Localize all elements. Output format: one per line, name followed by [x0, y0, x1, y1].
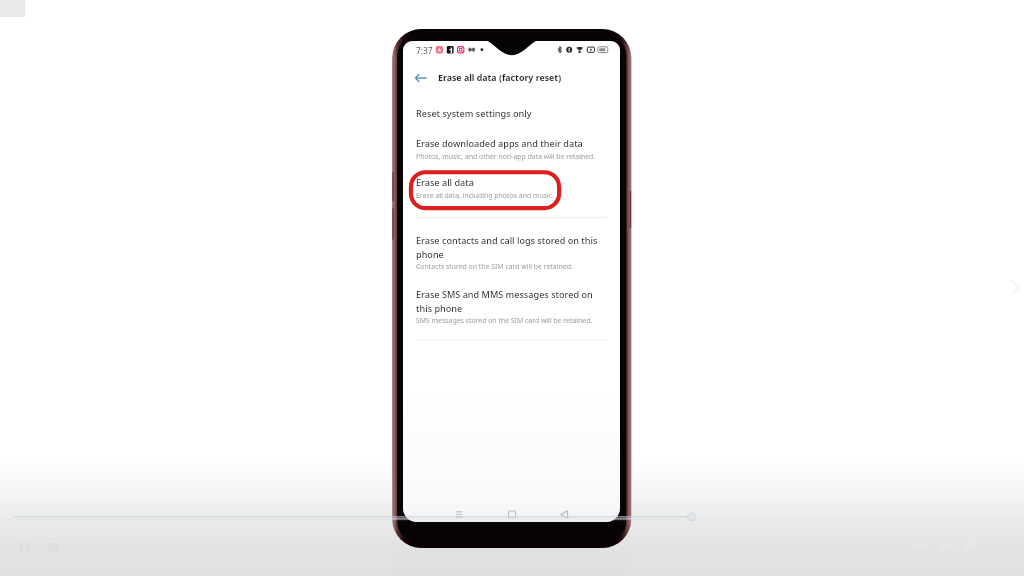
button[interactable]: Erase contacts and call logs stored on t…: [403, 230, 620, 278]
staticText: Photos, music, and other non-app data wi…: [416, 152, 596, 161]
staticText: phone: [416, 248, 444, 260]
staticText: SMS messages stored on the SIM card will…: [416, 316, 593, 325]
button[interactable]: Back: [555, 506, 573, 522]
button[interactable]: Erase downloaded apps and their data: [403, 134, 620, 165]
button[interactable]: Home: [503, 506, 521, 522]
staticText: Erase all data, including photos and mus…: [416, 191, 554, 200]
button[interactable]: Erase SMS and MMS messages stored on: [403, 284, 620, 332]
button[interactable]: Erase all data: [403, 171, 620, 208]
staticText: Erase SMS and MMS messages stored on: [416, 288, 593, 300]
staticText: Erase all data (factory reset): [438, 72, 562, 84]
staticText: Erase downloaded apps and their data: [416, 137, 583, 149]
staticText: this phone: [416, 302, 463, 314]
staticText: 7:37: [416, 45, 433, 56]
button[interactable]: Back: [413, 70, 429, 86]
staticText: Erase all data: [416, 176, 474, 188]
staticText: Erase contacts and call logs stored on t…: [416, 234, 598, 246]
button[interactable]: Recents: [450, 506, 468, 522]
staticText: Reset system settings only: [416, 107, 532, 119]
staticText: Contacts stored on the SIM card will be …: [416, 262, 573, 271]
button[interactable]: Reset system settings only: [403, 104, 620, 130]
